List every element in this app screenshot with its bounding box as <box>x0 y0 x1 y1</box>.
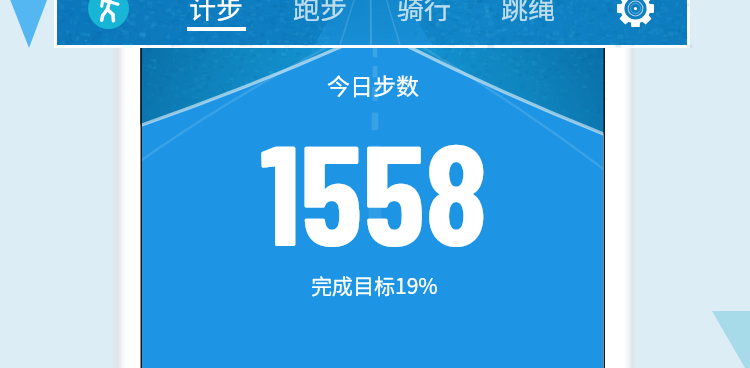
button[interactable]: Pedometer <box>88 0 129 29</box>
staticText: 1558 <box>260 104 488 274</box>
button[interactable]: 跳绳 <box>496 0 560 32</box>
button[interactable]: Settings <box>613 0 657 30</box>
staticText: 跑步 <box>293 0 347 27</box>
button[interactable]: 计步 <box>184 0 248 32</box>
staticText: 骑行 <box>397 0 451 27</box>
button[interactable]: 骑行 <box>392 0 456 32</box>
staticText: 计步 <box>189 0 243 27</box>
button[interactable]: 跑步 <box>288 0 352 32</box>
staticText: 完成目标19% <box>311 270 438 300</box>
staticText: 跳绳 <box>501 0 555 27</box>
staticText: 今日步数 <box>327 68 419 101</box>
